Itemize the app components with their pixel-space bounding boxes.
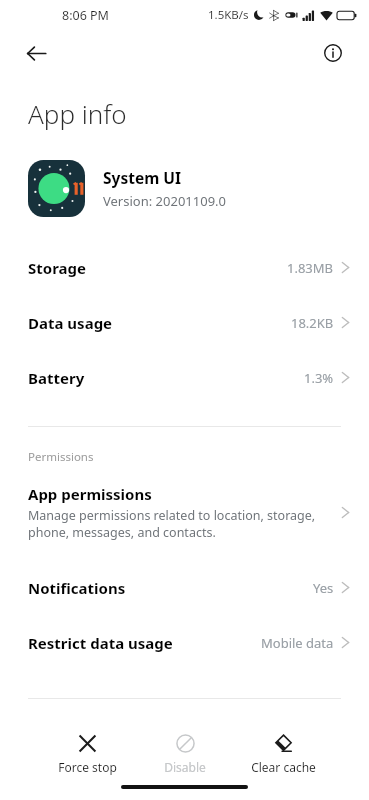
- staticText: System UI: [103, 167, 182, 188]
- staticText: Mobile data: [261, 634, 334, 652]
- staticText: 1.3%: [304, 369, 334, 387]
- button[interactable]: Clear cache: [244, 732, 322, 777]
- button[interactable]: Back: [16, 33, 56, 73]
- staticText: Battery: [28, 368, 85, 388]
- button[interactable]: Force stop: [48, 732, 126, 777]
- staticText: Permissions: [28, 449, 94, 465]
- staticText: App permissions: [28, 484, 152, 504]
- button[interactable]: App details info: [313, 33, 353, 73]
- button[interactable]: Disable: [146, 732, 224, 777]
- button[interactable]: Notifications: [0, 560, 369, 615]
- staticText: Force stop: [58, 759, 117, 775]
- button[interactable]: Storage: [0, 240, 369, 295]
- staticText: 1.83MB: [287, 259, 334, 277]
- staticText: 18.2KB: [291, 314, 334, 332]
- staticText: App info: [28, 96, 127, 131]
- staticText: Clear cache: [251, 759, 316, 775]
- staticText: Restrict data usage: [28, 633, 173, 653]
- staticText: Storage: [28, 258, 86, 278]
- staticText: Yes: [313, 579, 334, 597]
- button[interactable]: Data usage: [0, 295, 369, 350]
- staticText: Manage permissions related to location, …: [28, 507, 316, 540]
- staticText: Version: 20201109.0: [103, 192, 226, 210]
- staticText: 8:06 PM: [62, 7, 109, 24]
- staticText: Notifications: [28, 578, 126, 598]
- button[interactable]: Restrict data usage: [0, 615, 369, 670]
- staticText: 1.5KB/s: [208, 7, 249, 23]
- button[interactable]: App permissions: [0, 482, 369, 542]
- staticText: Data usage: [28, 313, 113, 333]
- button[interactable]: Battery: [0, 350, 369, 405]
- staticText: Disable: [164, 759, 206, 775]
